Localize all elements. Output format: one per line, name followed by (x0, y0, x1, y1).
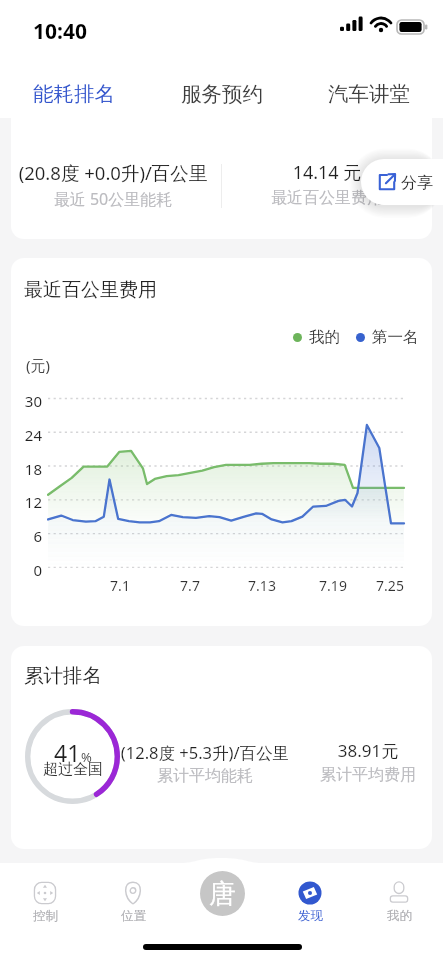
staticText: 最近百公里费用 (24, 278, 157, 302)
staticText: 我的 (387, 908, 412, 924)
staticText: 18 (11, 459, 42, 479)
staticText: 7.19 (303, 576, 363, 595)
staticText: 累计平均能耗 (105, 766, 305, 786)
staticText: 7.25 (360, 576, 420, 595)
staticText: % (81, 748, 92, 766)
staticText: 我的 (309, 327, 340, 347)
button[interactable]: 分享 (361, 159, 443, 205)
staticText: 位置 (121, 908, 146, 924)
staticText: 累计平均费用 (288, 765, 432, 785)
staticText: (20.8度 +0.0升)/百公里 (11, 160, 215, 185)
staticText: 7.13 (232, 576, 292, 595)
button[interactable]: 唐 (200, 871, 245, 916)
staticText: 服务预约 (181, 81, 263, 107)
staticText: 发现 (298, 908, 323, 924)
staticText: 分享 (401, 173, 433, 193)
staticText: 唐 (209, 877, 236, 911)
staticText: 24 (11, 425, 42, 445)
staticText: 累计排名 (24, 663, 102, 688)
staticText: (12.8度 +5.3升)/百公里 (105, 741, 305, 764)
button[interactable]: 我的 (361, 865, 437, 933)
staticText: 41 (54, 737, 81, 768)
staticText: 超过全国 (43, 760, 103, 779)
staticText: 30 (11, 391, 42, 411)
button[interactable]: 位置 (95, 865, 171, 933)
button[interactable]: 控制 (7, 865, 83, 933)
staticText: 最近百公里费用 (225, 188, 429, 208)
staticText: 0 (11, 560, 42, 580)
staticText: 6 (11, 526, 42, 546)
button[interactable]: 汽车讲堂 (315, 60, 423, 118)
button[interactable]: 发现 (272, 865, 348, 933)
staticText: 汽车讲堂 (328, 81, 410, 107)
staticText: 14.14 元 (225, 160, 429, 185)
staticText: 最近 50公里能耗 (11, 188, 215, 210)
button[interactable]: 服务预约 (168, 60, 276, 118)
staticText: 12 (11, 492, 42, 512)
staticText: 能耗排名 (33, 81, 115, 107)
staticText: 10:40 (33, 17, 87, 46)
staticText: 7.7 (160, 576, 220, 595)
staticText: 7.1 (90, 576, 150, 595)
staticText: 第一名 (372, 327, 419, 347)
staticText: (元) (26, 355, 51, 375)
staticText: 控制 (33, 908, 58, 924)
button[interactable]: 能耗排名 (20, 60, 128, 118)
staticText: 38.91元 (288, 739, 432, 762)
